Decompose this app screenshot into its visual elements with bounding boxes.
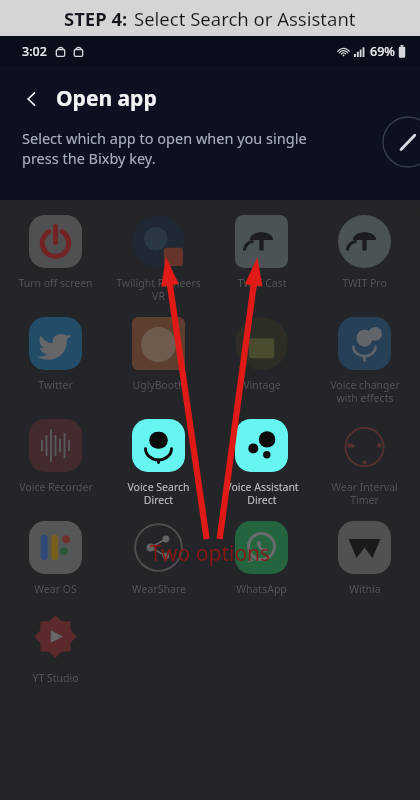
button[interactable]: WearShare — [107, 521, 210, 596]
button[interactable]: Voice Recorder — [4, 419, 107, 494]
staticText: Select Search or Assistant — [134, 6, 356, 31]
button[interactable]: Turn off screen — [4, 215, 107, 290]
staticText: TWIT Cast — [237, 276, 287, 290]
staticText: UglyBooth — [132, 378, 185, 392]
staticText: Select which app to open when you single… — [22, 128, 307, 169]
button[interactable]: Withia — [313, 521, 416, 596]
staticText: WearShare — [132, 582, 186, 596]
staticText: STEP 4: — [64, 6, 128, 31]
button[interactable]: Twilight Pioneers VR — [107, 215, 210, 303]
button[interactable]: Edit — [382, 116, 420, 168]
button[interactable]: Wear OS — [4, 521, 107, 596]
button[interactable]: UglyBooth — [107, 317, 210, 392]
staticText: Vintage — [243, 378, 281, 392]
staticText: WhatsApp — [236, 582, 287, 596]
button[interactable]: YT Studio — [4, 610, 107, 685]
staticText: TWIT Pro — [342, 276, 387, 290]
button[interactable]: WhatsApp — [210, 521, 313, 596]
button[interactable]: Voice changer with effects — [313, 317, 416, 405]
staticText: Twitter — [38, 378, 73, 392]
staticText: Voice Search Direct — [127, 480, 190, 507]
other: Back — [18, 85, 46, 113]
button[interactable]: TWIT Pro — [313, 215, 416, 290]
button[interactable]: Back — [18, 84, 157, 113]
staticText: Voice changer with effects — [330, 378, 400, 405]
staticText: Open app — [56, 84, 157, 113]
button[interactable]: Twitter — [4, 317, 107, 392]
button[interactable]: Wear Interval Timer — [313, 419, 416, 507]
staticText: 69% — [370, 43, 395, 60]
staticText: Wear Interval Timer — [331, 480, 398, 507]
staticText: Withia — [349, 582, 381, 596]
staticText: 3:02 — [22, 43, 47, 60]
staticText: Voice Recorder — [19, 480, 93, 494]
staticText: YT Studio — [32, 671, 79, 685]
staticText: Turn off screen — [18, 276, 93, 290]
button[interactable]: Voice Search Direct — [107, 419, 210, 507]
staticText: Two options — [0, 539, 420, 568]
button[interactable]: TWIT Cast — [210, 215, 313, 290]
staticText: Voice Assistant Direct — [225, 480, 299, 507]
button[interactable]: Vintage — [210, 317, 313, 392]
staticText: Twilight Pioneers VR — [116, 276, 201, 303]
staticText: Wear OS — [34, 582, 77, 596]
button[interactable]: Voice Assistant Direct — [210, 419, 313, 507]
